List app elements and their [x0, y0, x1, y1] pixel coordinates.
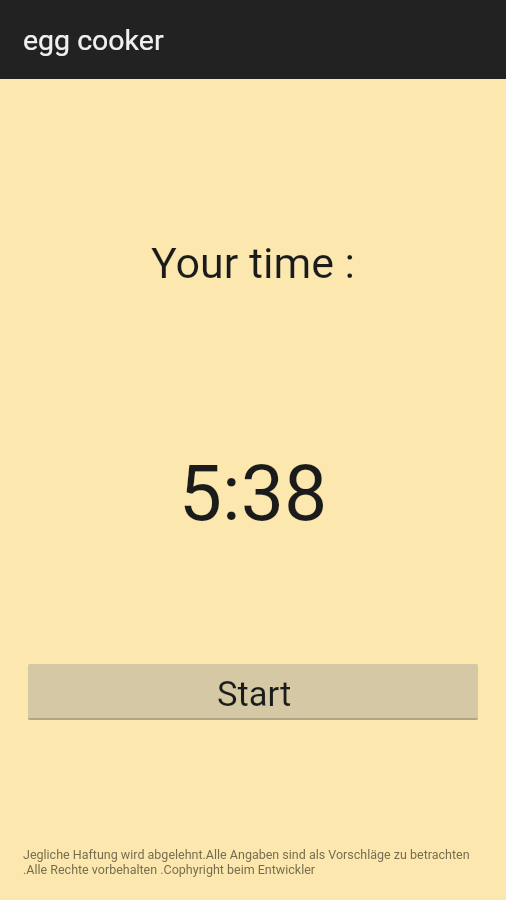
- staticText: .Alle Rechte vorbehalten .Cophyright bei…: [23, 862, 316, 877]
- staticText: egg cooker: [23, 24, 164, 57]
- staticText: Jegliche Haftung wird abgelehnt.Alle Ang…: [23, 847, 470, 862]
- staticText: Your time :: [0, 238, 506, 288]
- staticText: 5:38: [0, 449, 506, 539]
- button[interactable]: Start: [28, 664, 478, 720]
- staticText: Start: [217, 674, 292, 714]
